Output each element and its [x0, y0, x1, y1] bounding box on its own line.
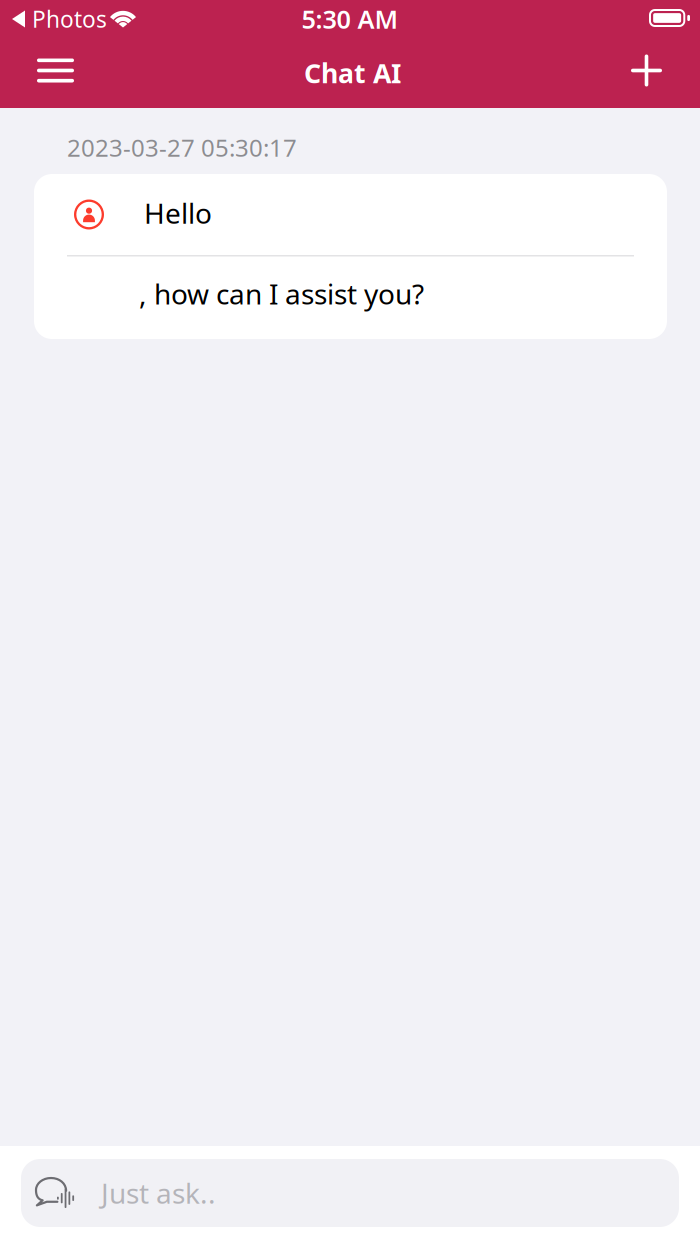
staticText: 2023-03-27 05:30:17	[67, 132, 297, 163]
button[interactable]: Just ask..	[0, 1146, 700, 1244]
button[interactable]: Menu	[0, 38, 98, 107]
button[interactable]: New chat	[607, 38, 700, 107]
staticText: Chat AI	[304, 55, 401, 91]
staticText: Just ask..	[101, 1174, 216, 1212]
staticText: Photos	[32, 4, 107, 34]
staticText: Hello	[144, 194, 212, 232]
staticText: 5:30 AM	[301, 2, 398, 36]
staticText: , how can I assist you?	[139, 275, 424, 312]
